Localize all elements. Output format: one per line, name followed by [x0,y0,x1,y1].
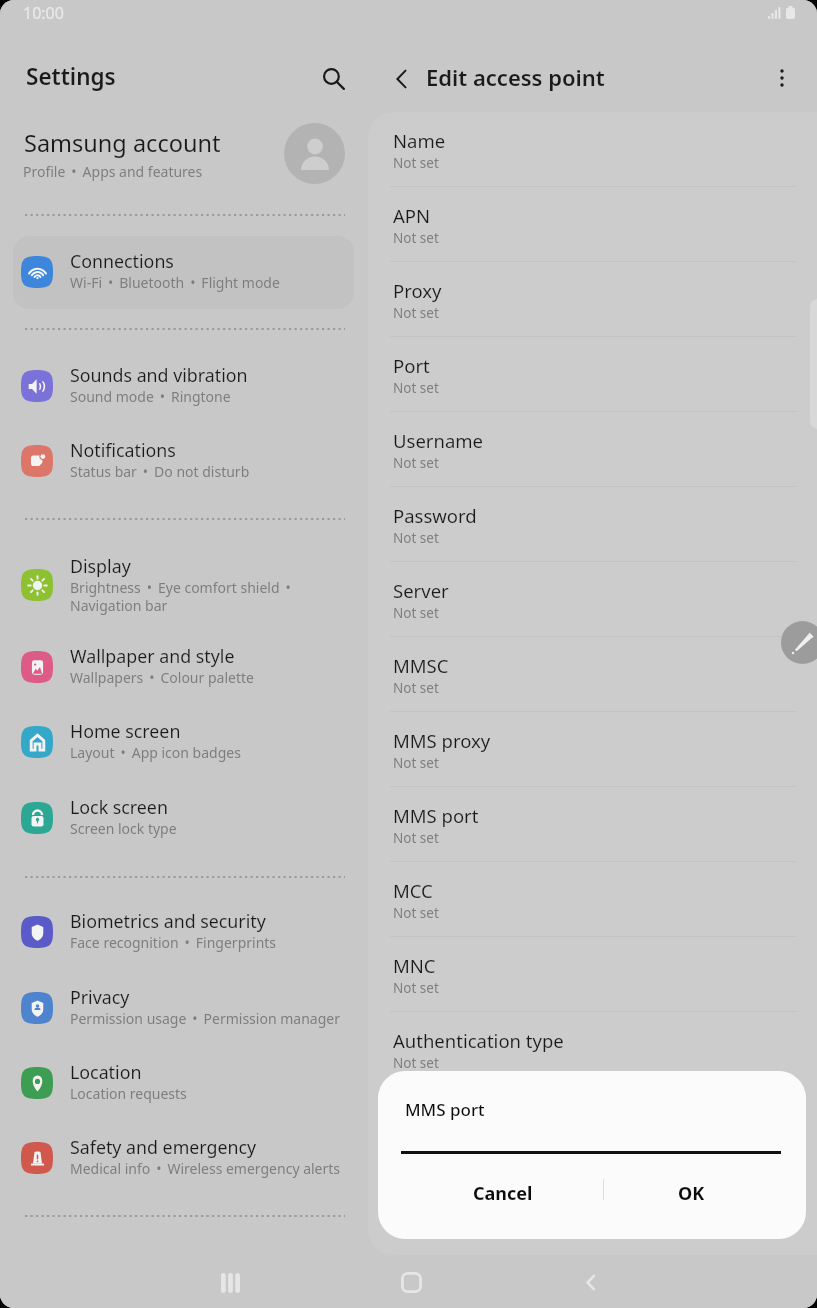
staticText: Cancel [473,1181,533,1206]
staticText: MMSC [393,653,449,678]
staticText: Not set [393,679,439,697]
staticText: Port [393,353,430,378]
staticText: Layout • App icon badges [70,743,241,762]
button[interactable]: More options [760,56,804,100]
staticText: Edit access point [426,62,605,92]
button[interactable] [13,1122,354,1194]
button[interactable] [368,1012,817,1087]
staticText: Not set [393,229,439,247]
button[interactable] [13,1047,354,1119]
staticText: Not set [393,979,439,997]
staticText: Permission usage • Permission manager [70,1009,340,1028]
staticText: Settings [26,61,116,92]
button[interactable] [368,637,817,712]
button[interactable] [368,262,817,337]
staticText: Home screen [70,719,181,743]
staticText: Not set [393,604,439,622]
staticText: Privacy [70,985,130,1009]
staticText: APN [393,203,431,228]
staticText: Profile • Apps and features [23,162,203,181]
staticText: Not set [393,454,439,472]
button[interactable] [13,350,354,422]
button[interactable] [13,425,354,497]
staticText: Not set [393,829,439,847]
button[interactable] [13,631,354,703]
staticText: Status bar • Do not disturb [70,462,250,481]
button[interactable] [368,112,817,187]
staticText: Not set [393,754,439,772]
staticText: 10:00 [23,2,64,24]
staticText: MMS port [405,1098,485,1121]
staticText: Authentication type [393,1028,564,1053]
button[interactable]: Home [386,1257,437,1308]
staticText: Location requests [70,1084,187,1103]
button[interactable] [368,712,817,787]
button[interactable] [13,972,354,1044]
staticText: Lock screen [70,795,168,819]
button[interactable] [0,116,368,194]
staticText: Password [393,503,477,528]
button[interactable] [368,412,817,487]
staticText: Not set [393,1054,439,1072]
button[interactable] [13,549,354,621]
staticText: Sounds and vibration [70,363,248,387]
staticText: MMS proxy [393,728,491,753]
button[interactable]: Back [565,1257,616,1308]
button[interactable] [13,782,354,854]
staticText: Name [393,128,446,153]
staticText: Notifications [70,438,176,462]
staticText: Sound mode • Ringtone [70,387,231,406]
staticText: Medical info • Wireless emergency alerts [70,1159,341,1178]
button[interactable]: Edit [781,621,817,664]
staticText: Wallpapers • Colour palette [70,668,254,687]
button[interactable]: Cancel [408,1166,598,1220]
button[interactable] [368,787,817,862]
button[interactable] [13,236,354,308]
staticText: Not set [393,154,439,172]
staticText: Safety and emergency [70,1135,257,1159]
button[interactable] [13,706,354,778]
button[interactable] [368,937,817,1012]
button[interactable] [368,487,817,562]
button[interactable]: Recents [205,1257,256,1308]
staticText: MMS port [393,803,479,828]
staticText: Location [70,1060,142,1084]
staticText: Not set [393,529,439,547]
staticText: Connections [70,249,174,273]
staticText: Screen lock type [70,819,177,838]
button[interactable]: Back [380,57,424,101]
staticText: Not set [393,379,439,397]
staticText: Face recognition • Fingerprints [70,933,277,952]
staticText: Not set [393,304,439,322]
staticText: Proxy [393,278,442,303]
button[interactable]: Profile picture [284,123,345,184]
button[interactable] [13,896,354,968]
button[interactable]: OK [608,1166,774,1220]
staticText: Wallpaper and style [70,644,235,668]
button[interactable]: Search [311,56,355,100]
staticText: Biometrics and security [70,909,266,933]
staticText: Server [393,578,449,603]
button[interactable] [368,862,817,937]
staticText: Navigation bar [70,596,168,615]
staticText: Samsung account [24,127,221,159]
button[interactable] [368,562,817,637]
staticText: Username [393,428,484,453]
staticText: Brightness • Eye comfort shield • [70,578,291,597]
staticText: Not set [393,904,439,922]
staticText: Wi-Fi • Bluetooth • Flight mode [70,273,280,292]
staticText: OK [678,1181,705,1206]
button[interactable] [368,337,817,412]
staticText: MNC [393,953,436,978]
button[interactable] [368,187,817,262]
staticText: Display [70,554,131,578]
staticText: MCC [393,878,433,903]
